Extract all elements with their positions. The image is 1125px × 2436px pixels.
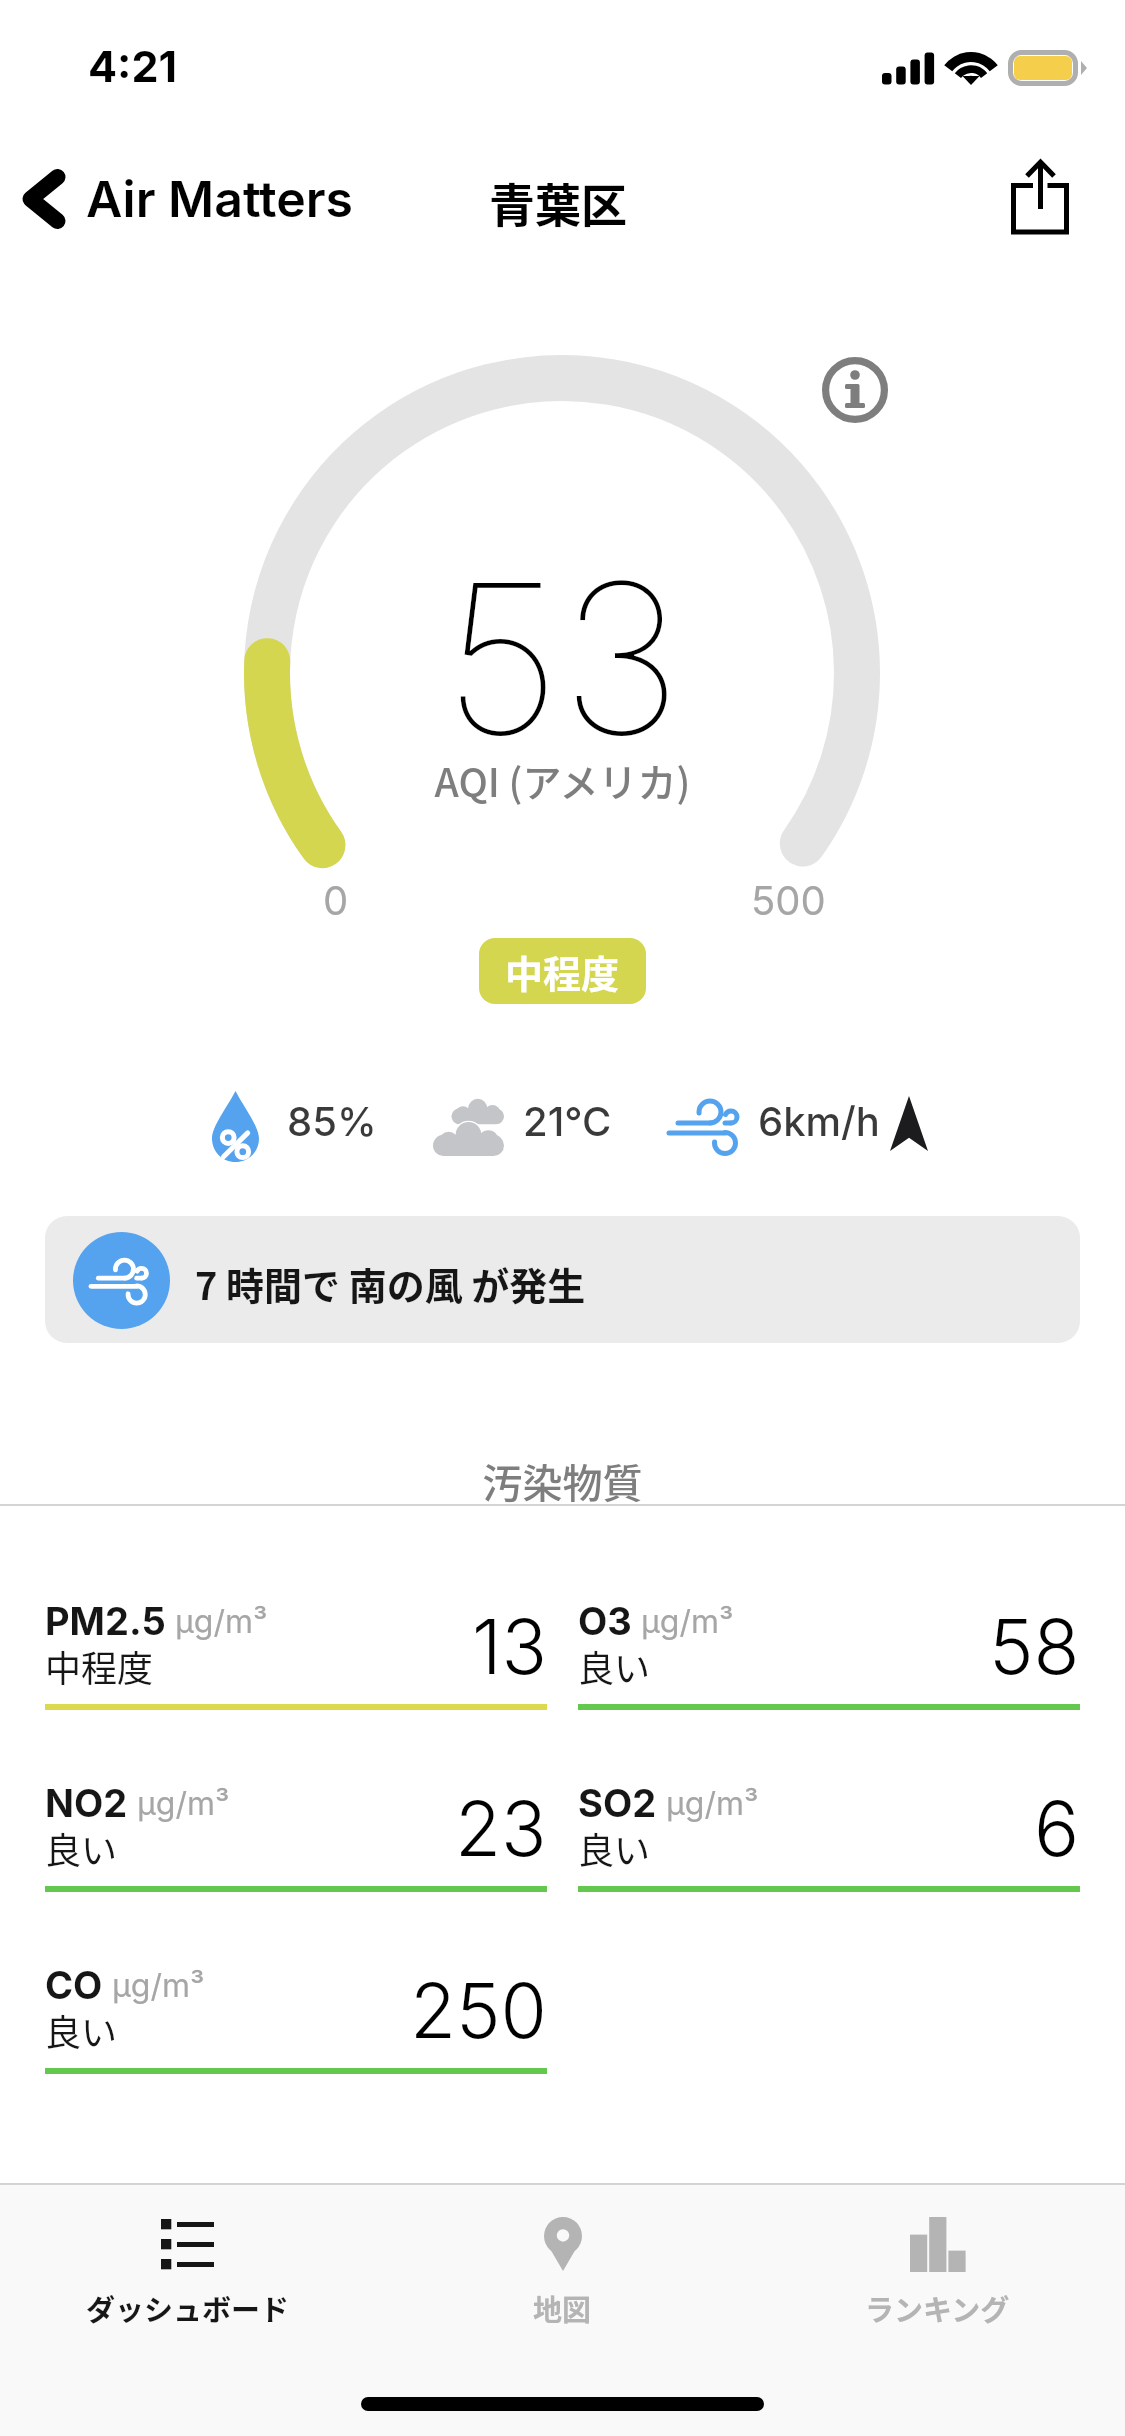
staticText: 0 (323, 876, 349, 924)
button[interactable]: ダッシュボード (0, 2185, 375, 2329)
staticText: 良い (578, 1640, 651, 1692)
staticText: CO (45, 1962, 103, 2008)
button[interactable]: Air Matters (16, 158, 370, 240)
button[interactable]: Share (1000, 150, 1084, 244)
staticText: 汚染物質 (0, 1452, 1125, 1510)
staticText: 良い (578, 1822, 651, 1874)
staticText: μg/m³ (666, 1784, 759, 1823)
button[interactable]: SO2 (578, 1770, 1080, 1892)
staticText: NO2 (45, 1780, 128, 1826)
staticText: PM2.5 (45, 1598, 166, 1644)
staticText: SO2 (578, 1780, 657, 1826)
button[interactable]: 中程度 (479, 938, 646, 1004)
staticText: 4:21 (88, 40, 178, 92)
staticText: 58 (989, 1601, 1080, 1692)
button[interactable]: O3 (578, 1588, 1080, 1710)
staticText: μg/m³ (137, 1784, 230, 1823)
staticText: 良い (45, 2004, 118, 2056)
staticText: 250 (410, 1965, 547, 2056)
staticText: 地図 (533, 2287, 592, 2329)
button[interactable]: 7 時間で 南の風 が発生 (45, 1216, 1080, 1343)
staticText: 21°C (523, 1097, 612, 1145)
button[interactable]: Information (811, 346, 899, 434)
staticText: ランキング (865, 2287, 1010, 2329)
staticText: 13 (472, 1601, 547, 1692)
staticText: 中程度 (505, 944, 620, 999)
staticText: 500 (751, 876, 826, 924)
staticText: 23 (455, 1783, 547, 1874)
staticText: O3 (578, 1598, 632, 1644)
staticText: Air Matters (86, 169, 354, 229)
staticText: AQI (アメリカ) (0, 752, 1125, 808)
staticText: 6 (1034, 1783, 1080, 1874)
staticText: ダッシュボード (86, 2287, 290, 2329)
staticText: 6km/h (758, 1097, 880, 1145)
button[interactable]: ランキング (750, 2185, 1125, 2329)
button[interactable]: PM2.5 (45, 1588, 547, 1710)
staticText: μg/m³ (175, 1602, 268, 1641)
staticText: 青葉区 (489, 169, 627, 236)
staticText: 良い (45, 1822, 118, 1874)
staticText: μg/m³ (112, 1966, 205, 2005)
button[interactable]: NO2 (45, 1770, 547, 1892)
button[interactable]: CO (45, 1952, 547, 2074)
staticText: 85% (287, 1097, 377, 1145)
staticText: 53 (0, 532, 1125, 784)
button[interactable]: 地図 (375, 2185, 750, 2329)
staticText: μg/m³ (641, 1602, 734, 1641)
staticText: 7 時間で 南の風 が発生 (195, 1256, 586, 1311)
staticText: 中程度 (45, 1640, 154, 1692)
